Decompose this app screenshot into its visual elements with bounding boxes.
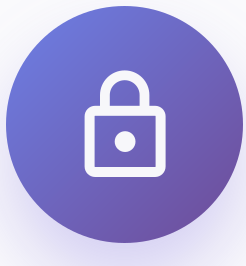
button[interactable]: Locked <box>6 6 243 243</box>
